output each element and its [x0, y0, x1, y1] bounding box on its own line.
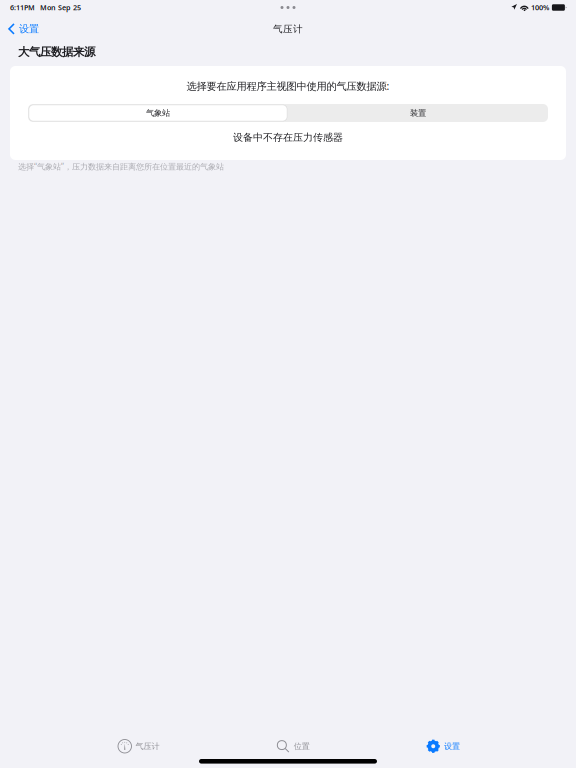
staticText: 气压计 — [273, 23, 303, 35]
button[interactable]: 气压计 — [110, 730, 167, 754]
button[interactable]: 位置 — [268, 730, 318, 754]
button[interactable]: 装置 — [288, 104, 548, 122]
button[interactable]: 设置 — [0, 19, 47, 39]
staticText: 选择要在应用程序主视图中使用的气压数据源: — [186, 79, 389, 93]
staticText: 位置 — [294, 741, 310, 751]
staticText: 装置 — [410, 108, 426, 118]
staticText: 设备中不存在压力传感器 — [233, 131, 343, 144]
staticText: 大气压数据来源 — [18, 45, 95, 59]
staticText: 100% — [531, 2, 549, 12]
staticText: 选择“气象站”，压力数据来自距离您所在位置最近的气象站 — [18, 161, 224, 172]
staticText: 气压计 — [135, 741, 159, 751]
staticText: 气象站 — [146, 108, 170, 118]
staticText: Mon Sep 25 — [40, 3, 81, 12]
staticText: 设置 — [444, 741, 460, 751]
staticText: 设置 — [19, 23, 39, 35]
staticText: 6:11PM — [10, 3, 35, 12]
button[interactable]: 设置 — [418, 730, 468, 754]
button[interactable]: 气象站 — [28, 104, 288, 122]
